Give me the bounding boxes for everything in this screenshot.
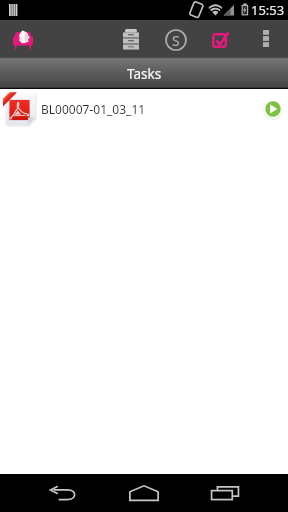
- staticText: S: [172, 31, 180, 50]
- button[interactable]: BL00007-01_03_11: [0, 89, 288, 129]
- button[interactable]: Start task: [258, 94, 288, 124]
- button[interactable]: More options: [246, 20, 285, 57]
- staticText: 15:53: [251, 1, 285, 19]
- button[interactable]: Home: [0, 20, 46, 57]
- button[interactable]: Tasks: [200, 20, 242, 57]
- staticText: Tasks: [127, 65, 162, 83]
- button[interactable]: Sync: [155, 20, 197, 57]
- button[interactable]: Archive: [110, 20, 151, 57]
- button[interactable]: Recent apps: [193, 474, 257, 512]
- button[interactable]: Back: [31, 474, 95, 512]
- button[interactable]: Home: [112, 474, 176, 512]
- staticText: BL00007-01_03_11: [41, 101, 146, 117]
